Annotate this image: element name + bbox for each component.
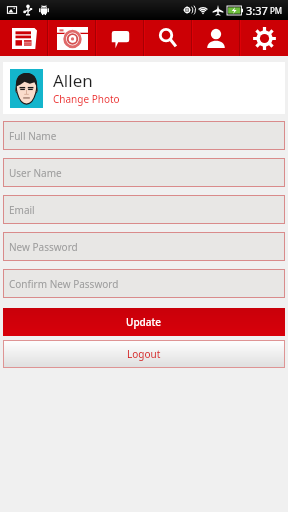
button[interactable]: Search [144,20,192,56]
staticText: Change Photo [53,92,120,106]
staticText: User Name [9,166,62,180]
button[interactable]: Full Name [3,121,285,150]
button[interactable]: Settings [240,20,288,56]
staticText: Allen [53,69,93,92]
staticText: PM [270,5,283,16]
button[interactable]: Profile [192,20,240,56]
button[interactable]: Feed [0,20,48,56]
button[interactable]: Email [3,195,285,224]
staticText: New Password [9,240,78,254]
staticText: Update [126,315,162,329]
button[interactable]: Camera [48,20,96,56]
button[interactable]: Confirm New Password [3,269,285,298]
staticText: Full Name [9,129,57,143]
button[interactable]: Update [3,308,285,336]
staticText: Logout [127,347,161,361]
button[interactable]: Logout [3,340,285,368]
staticText: Confirm New Password [9,277,119,291]
button[interactable]: User Name [3,158,285,187]
button[interactable]: Allen [3,62,285,114]
button[interactable]: New Password [3,232,285,261]
staticText: 3:37 [246,3,268,18]
button[interactable]: Messages [96,20,144,56]
staticText: Email [9,203,35,217]
